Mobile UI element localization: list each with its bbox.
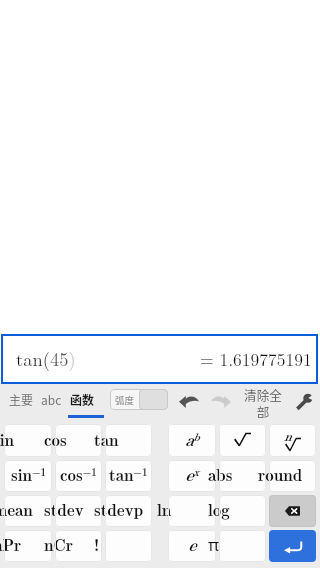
- staticText: 函数: [70, 391, 95, 408]
- button[interactable]: Delete: [269, 495, 316, 527]
- staticText: ab: [185, 427, 200, 451]
- button[interactable]: abs: [219, 460, 266, 492]
- staticText: ln: [157, 497, 227, 521]
- button[interactable]: Undo: [177, 389, 201, 413]
- button[interactable]: 主要: [6, 384, 37, 418]
- staticText: stdev: [44, 497, 114, 521]
- staticText: tan: [94, 427, 164, 451]
- other: Enter: [284, 541, 302, 551]
- button[interactable]: π: [219, 530, 266, 562]
- other: Delete: [285, 506, 300, 516]
- button[interactable]: sin−1: [4, 460, 52, 492]
- staticText: sin−1: [11, 462, 46, 486]
- button[interactable]: Settings: [291, 388, 317, 414]
- button[interactable]: e: [168, 530, 216, 562]
- button[interactable]: ab: [168, 424, 216, 457]
- button[interactable]: Enter: [269, 530, 316, 562]
- button[interactable]: nCr: [55, 530, 102, 562]
- staticText: 清除全部: [241, 385, 285, 419]
- button[interactable]: stdev: [55, 495, 102, 527]
- button[interactable]: 函数: [66, 384, 98, 418]
- staticText: log: [208, 497, 278, 521]
- staticText: mean: [0, 497, 63, 521]
- staticText: cos: [44, 427, 114, 451]
- button[interactable]: [219, 424, 266, 457]
- button[interactable]: cos−1: [55, 460, 102, 492]
- staticText: abs: [208, 462, 278, 486]
- button[interactable]: n: [269, 424, 316, 457]
- staticText: tan(45): [16, 345, 76, 371]
- staticText: cos−1: [60, 462, 97, 486]
- staticText: nCr: [44, 532, 114, 556]
- button[interactable]: abc: [37, 384, 66, 418]
- staticText: = 1.619775191: [200, 346, 312, 371]
- button[interactable]: ln: [168, 495, 216, 527]
- staticText: e: [188, 532, 196, 556]
- staticText: ex: [185, 462, 199, 486]
- staticText: 弧度: [115, 393, 135, 407]
- staticText: abc: [41, 391, 62, 408]
- button[interactable]: log: [219, 495, 266, 527]
- staticText: !: [94, 532, 164, 556]
- button[interactable]: !: [105, 530, 152, 562]
- staticText: n: [284, 426, 292, 445]
- button[interactable]: nPr: [4, 530, 52, 562]
- button[interactable]: Redo: [209, 389, 233, 413]
- button[interactable]: 弧度: [110, 389, 168, 410]
- staticText: stdevp: [94, 497, 164, 521]
- staticText: sin: [0, 427, 63, 451]
- staticText: nPr: [0, 532, 63, 556]
- button[interactable]: 清除全部: [239, 384, 283, 418]
- staticText: π: [208, 533, 278, 556]
- button[interactable]: stdevp: [105, 495, 152, 527]
- button[interactable]: round: [269, 460, 316, 492]
- button[interactable]: ex: [168, 460, 216, 492]
- staticText: round: [258, 462, 320, 486]
- staticText: tan−1: [109, 462, 148, 486]
- staticText: 主要: [9, 391, 34, 408]
- button[interactable]: tan−1: [105, 460, 152, 492]
- button[interactable]: tan: [105, 424, 152, 457]
- button[interactable]: tan(45): [1, 334, 318, 384]
- button[interactable]: cos: [55, 424, 102, 457]
- button[interactable]: sin: [4, 424, 52, 457]
- button[interactable]: mean: [4, 495, 52, 527]
